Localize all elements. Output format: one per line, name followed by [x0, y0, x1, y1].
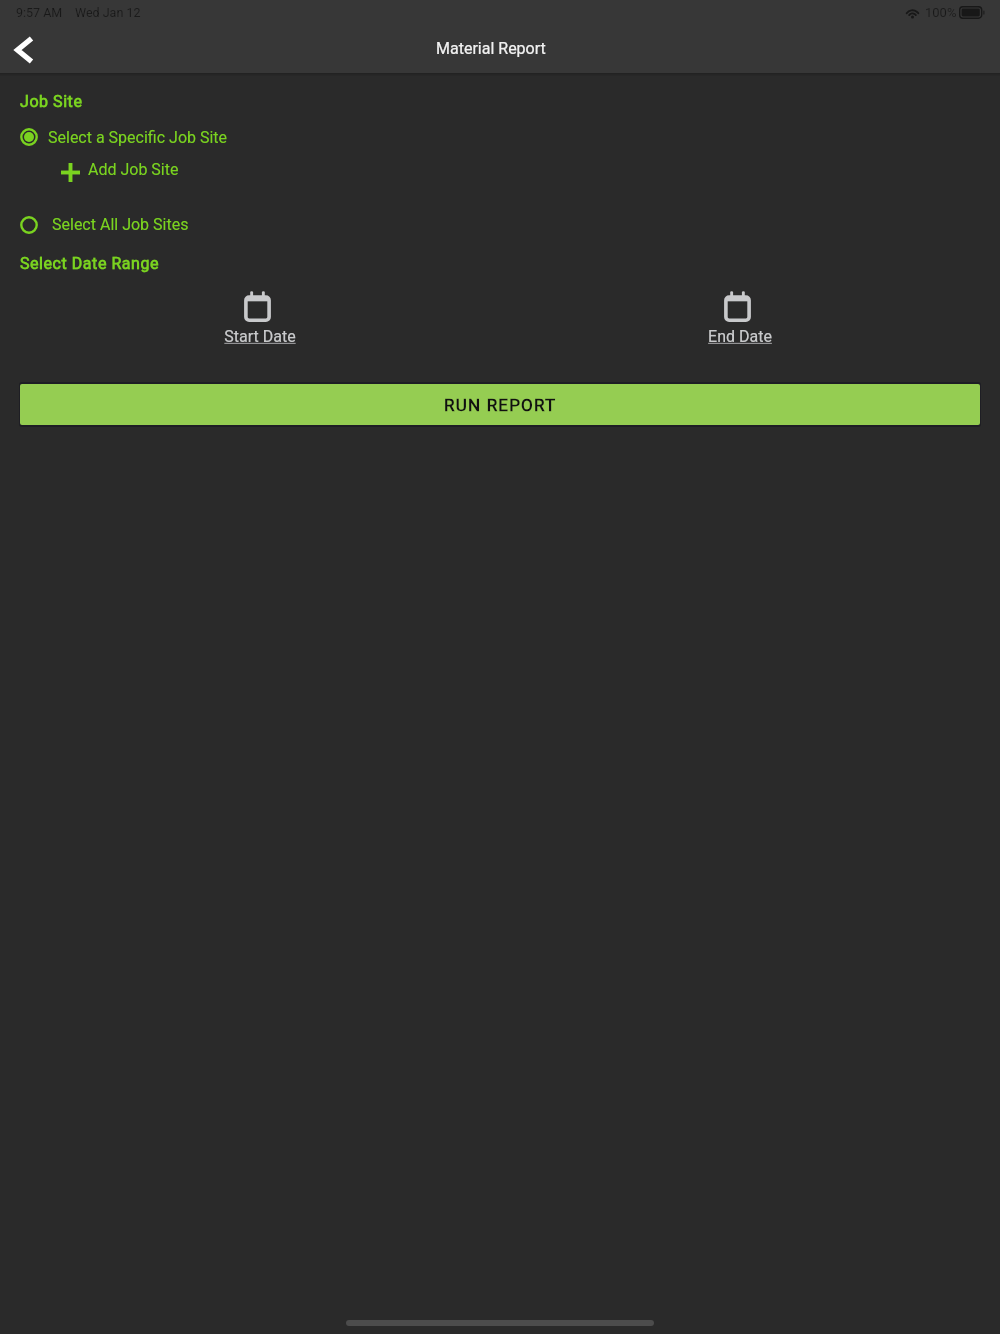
button[interactable]: Back: [0, 26, 46, 72]
button[interactable]: Select a Specific Job Site: [0, 122, 1000, 152]
staticText: 9:57 AM: [16, 5, 63, 20]
staticText: Wed Jan 12: [75, 5, 141, 20]
staticText: End Date: [708, 327, 772, 346]
staticText: Add Job Site: [88, 160, 179, 179]
button[interactable]: Select All Job Sites: [0, 210, 1000, 239]
button[interactable]: RUN REPORT: [20, 384, 980, 425]
button[interactable]: End Date: [500, 291, 980, 346]
staticText: Select All Job Sites: [52, 215, 189, 234]
staticText: Select Date Range: [20, 254, 160, 273]
staticText: RUN REPORT: [444, 395, 557, 415]
staticText: Material Report: [436, 39, 546, 58]
button[interactable]: Start Date: [20, 291, 500, 346]
staticText: Job Site: [20, 92, 83, 111]
staticText: 100%: [925, 5, 957, 20]
staticText: Select a Specific Job Site: [48, 128, 228, 147]
staticText: Start Date: [224, 327, 296, 346]
button[interactable]: Add Job Site: [61, 157, 179, 187]
